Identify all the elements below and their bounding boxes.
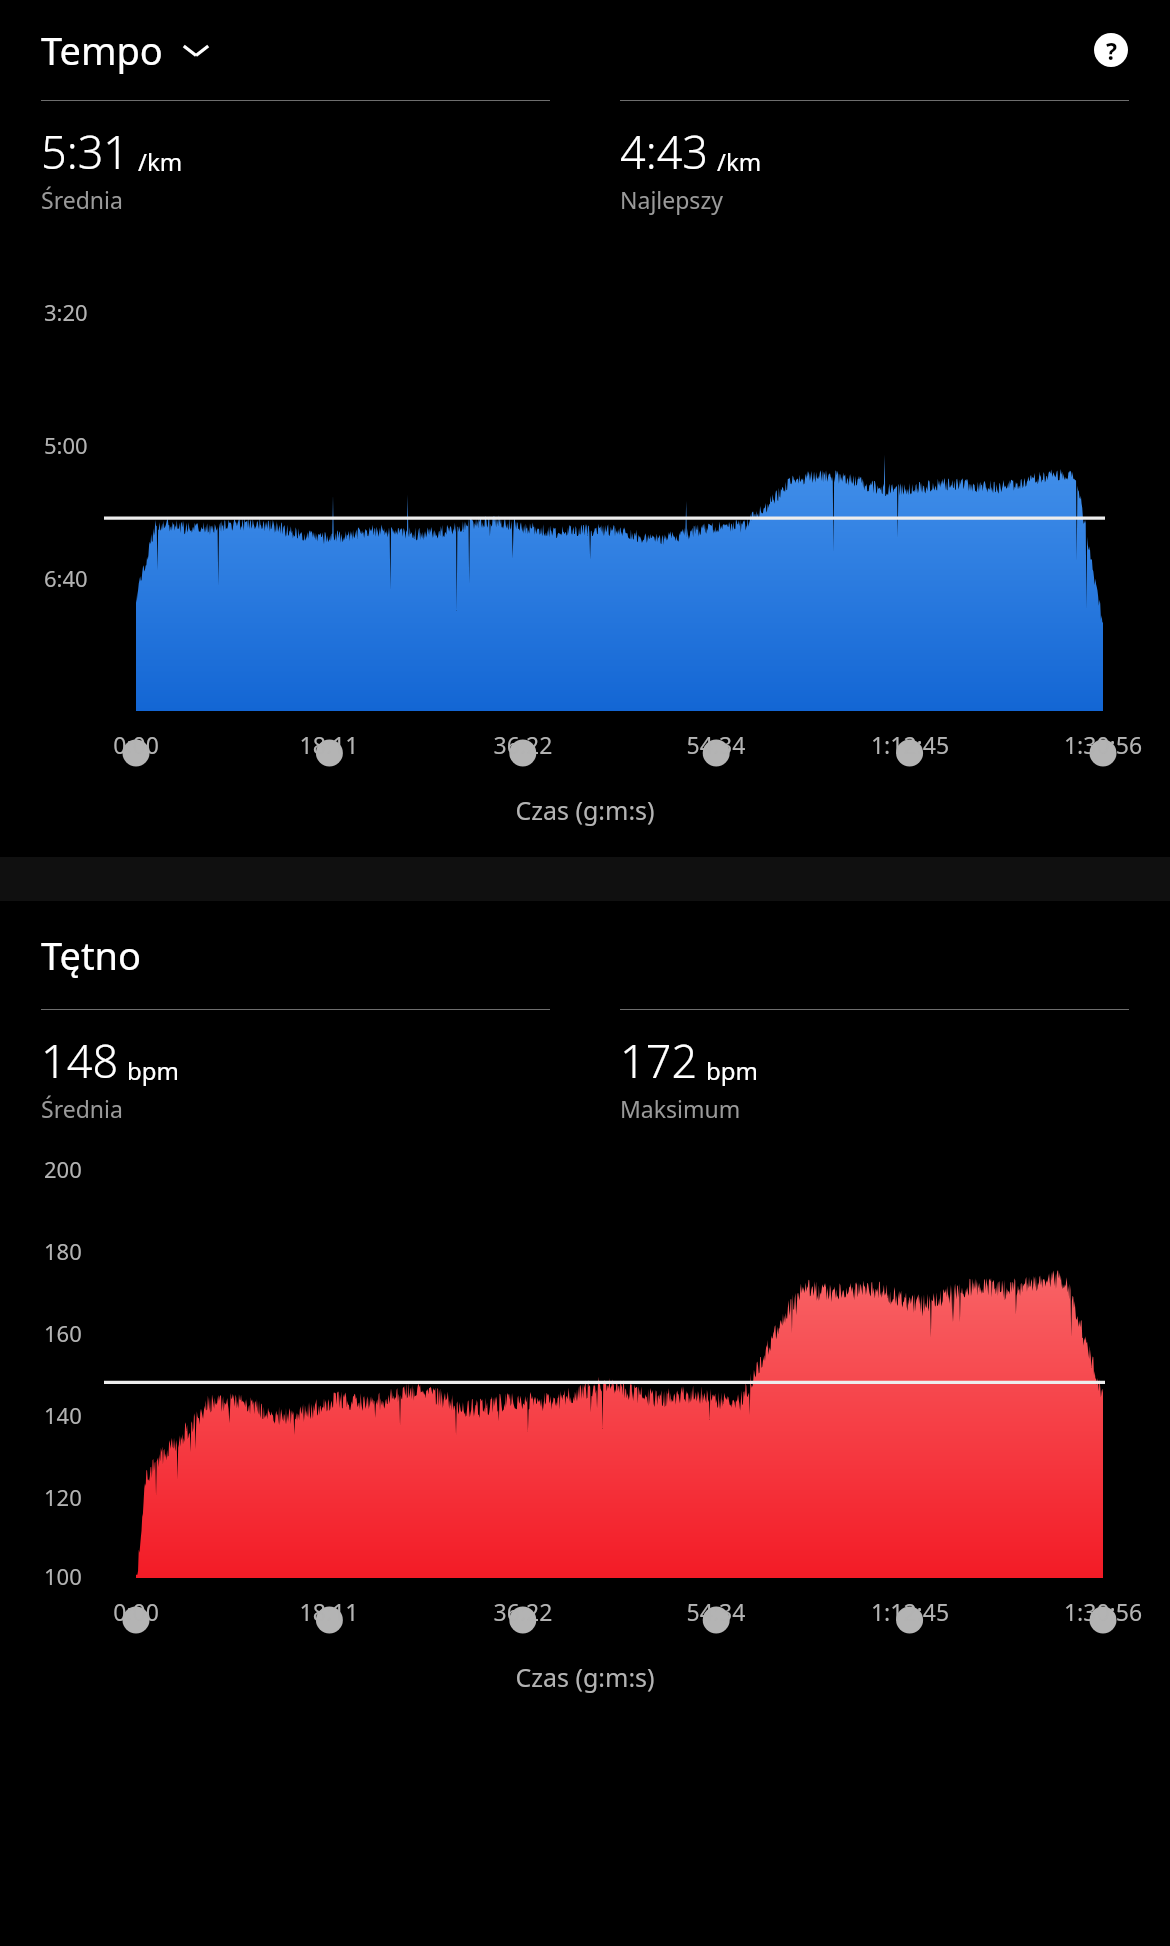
- staticText: 5:31: [41, 121, 130, 182]
- staticText: 5:00: [44, 430, 88, 460]
- staticText: 0:00: [56, 1596, 216, 1627]
- staticText: bpm: [127, 1054, 179, 1087]
- staticText: 148: [41, 1030, 119, 1091]
- staticText: 18:11: [249, 1596, 409, 1627]
- staticText: 200: [44, 1154, 82, 1184]
- staticText: 1:12:45: [830, 1596, 990, 1627]
- staticText: Tempo: [41, 24, 163, 76]
- staticText: 100: [44, 1561, 82, 1591]
- staticText: 160: [44, 1318, 82, 1348]
- staticText: /km: [717, 145, 762, 178]
- staticText: 1:30:56: [1023, 1596, 1170, 1627]
- staticText: 4:43: [620, 121, 709, 182]
- staticText: /km: [138, 145, 183, 178]
- staticText: 0:00: [56, 729, 216, 760]
- staticText: 36:22: [443, 729, 603, 760]
- staticText: 120: [44, 1482, 82, 1512]
- staticText: Tętno: [41, 929, 142, 981]
- staticText: 1:30:56: [1023, 729, 1170, 760]
- staticText: Najlepszy: [620, 184, 723, 215]
- staticText: Średnia: [41, 1093, 123, 1124]
- staticText: Czas (g:m:s): [0, 793, 1170, 827]
- staticText: 54:34: [636, 729, 796, 760]
- staticText: Średnia: [41, 184, 123, 215]
- staticText: 6:40: [44, 563, 88, 593]
- staticText: 36:22: [443, 1596, 603, 1627]
- staticText: 54:34: [636, 1596, 796, 1627]
- button[interactable]: Tętno: [41, 929, 142, 981]
- staticText: ?: [1106, 35, 1117, 66]
- staticText: Maksimum: [620, 1093, 741, 1124]
- staticText: 140: [44, 1400, 82, 1430]
- staticText: 180: [44, 1236, 82, 1266]
- staticText: 1:12:45: [830, 729, 990, 760]
- staticText: 18:11: [249, 729, 409, 760]
- button[interactable]: Tempo: [41, 24, 213, 76]
- staticText: 3:20: [44, 297, 88, 327]
- staticText: Czas (g:m:s): [0, 1660, 1170, 1694]
- staticText: bpm: [706, 1054, 758, 1087]
- staticText: 172: [620, 1030, 698, 1091]
- button[interactable]: Help: [1094, 33, 1128, 67]
